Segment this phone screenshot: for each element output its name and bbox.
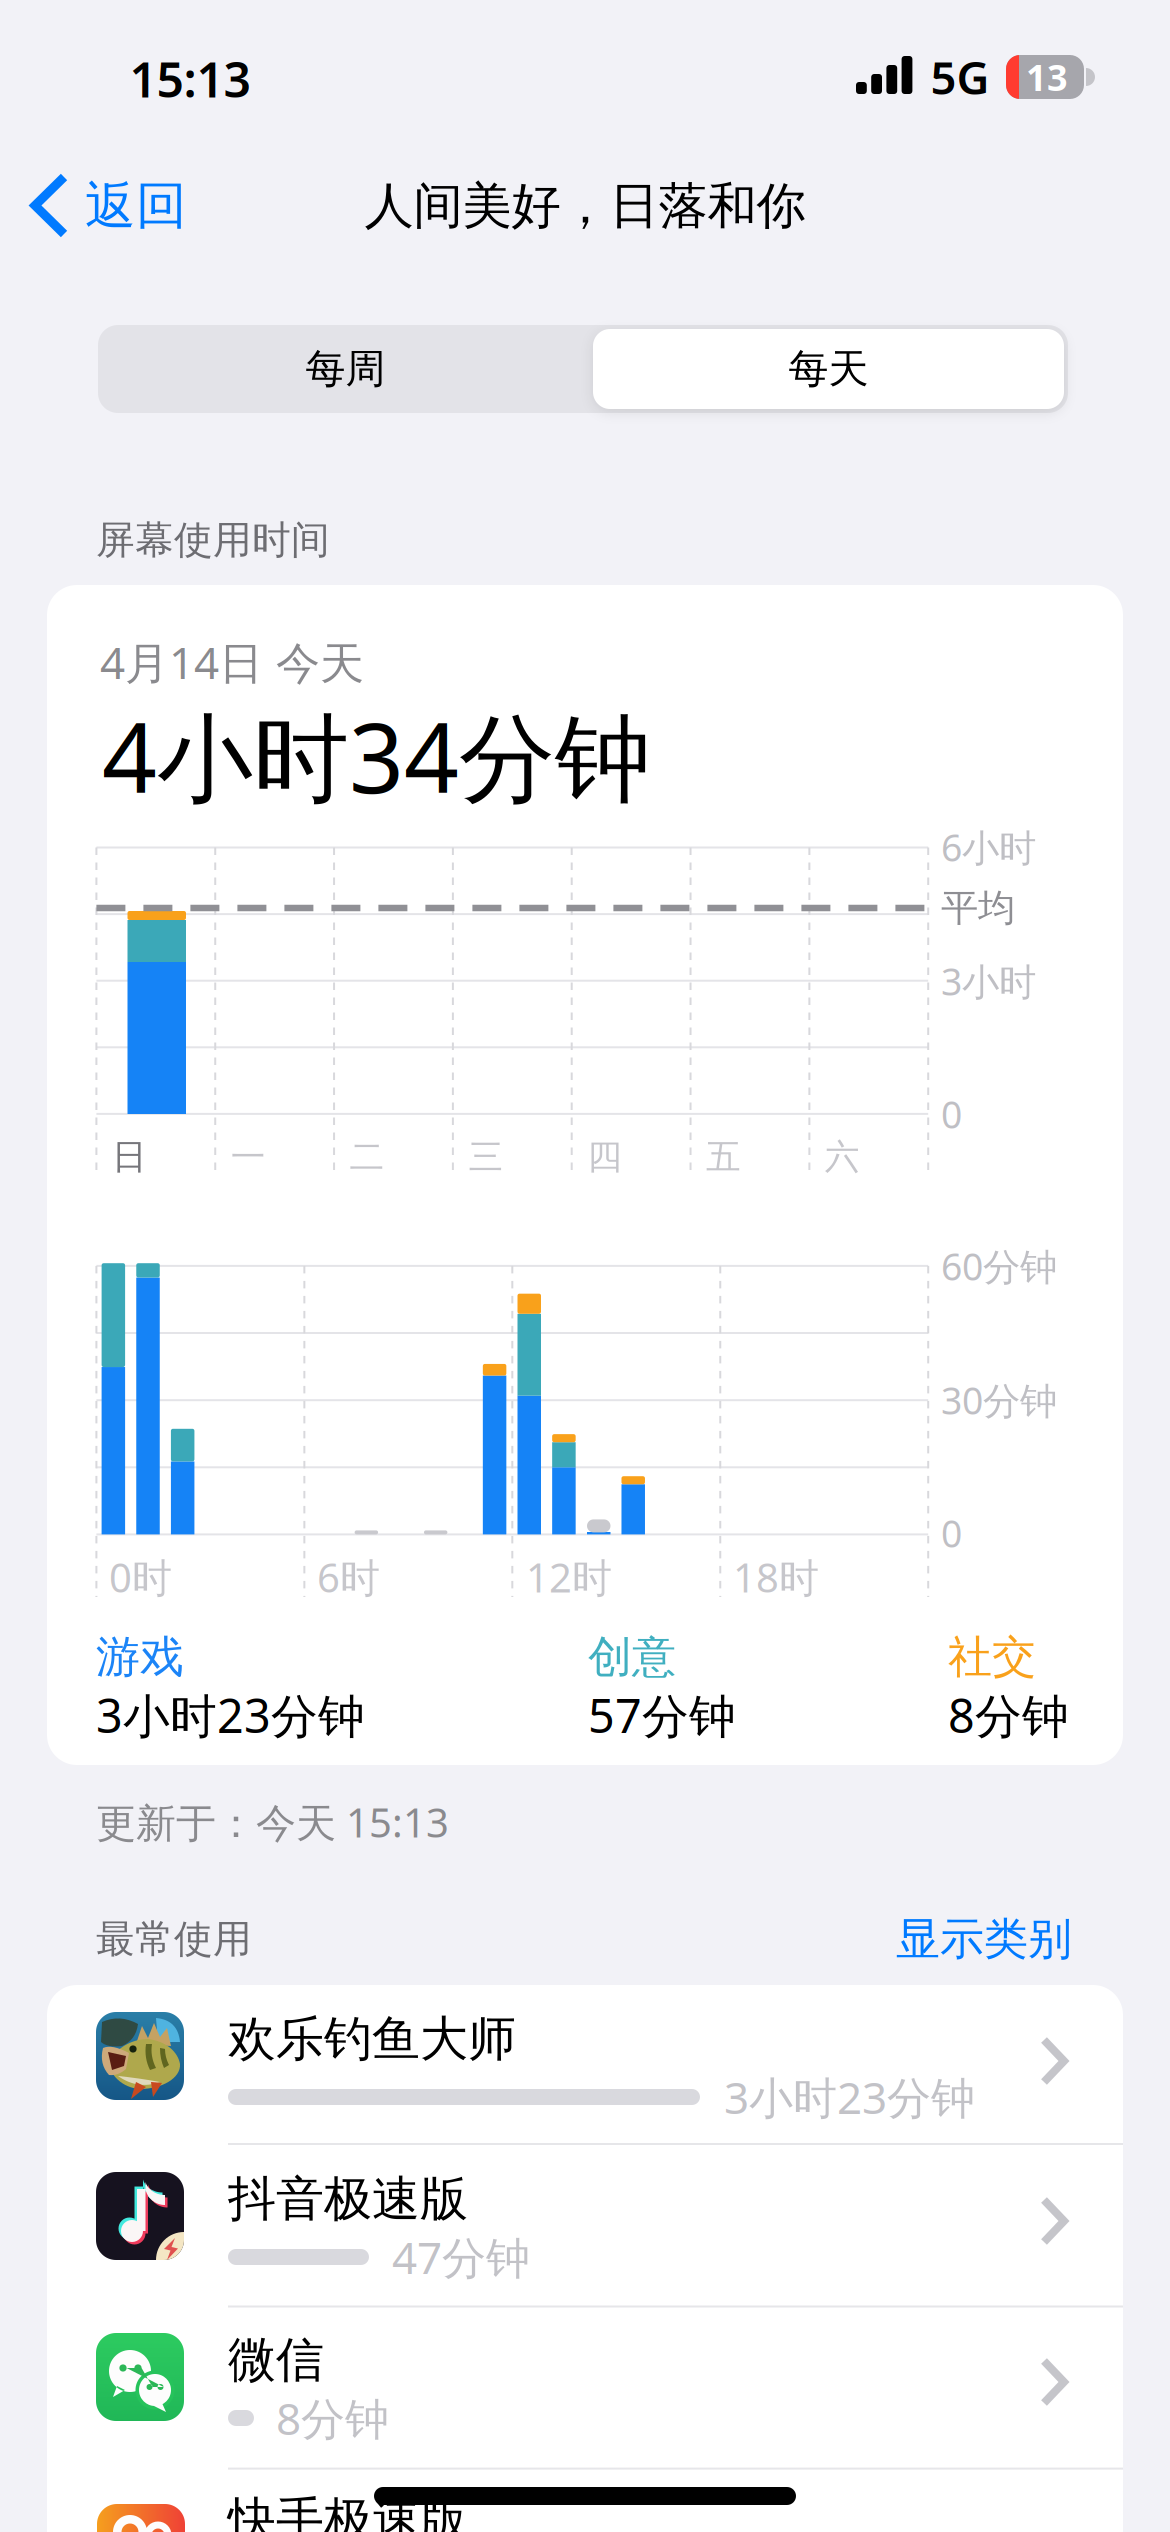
button[interactable]: 抖音极速版 [47,2145,1123,2306]
staticText: 8分钟 [948,1684,1069,1746]
staticText: 显示类别 [896,1912,1072,1966]
button[interactable]: 微信 [47,2306,1123,2467]
staticText: 8分钟 [276,2389,389,2447]
staticText: 47分钟 [392,2228,530,2286]
staticText: 抖音极速版 [228,2169,468,2228]
staticText: 三 [468,1136,503,1178]
staticText: 18时 [733,1550,819,1603]
staticText: 3小时23分钟 [724,2068,975,2126]
staticText: 屏幕使用时间 [96,516,330,564]
staticText: 6小时 [941,822,1036,872]
staticText: 更新于：今天 15:13 [96,1795,449,1848]
button[interactable]: 快手极速版 [47,2468,1123,2532]
staticText: 30分钟 [941,1375,1057,1425]
staticText: 社交 [948,1630,1036,1684]
staticText: 返回 [85,175,187,237]
staticText: 人间美好，日落和你 [364,176,805,236]
staticText: 0 [941,1508,962,1558]
staticText: 快手极速版 [228,2490,468,2532]
staticText: 3小时23分钟 [96,1684,365,1746]
button[interactable]: 每天 [593,329,1064,409]
staticText: 创意 [588,1630,676,1684]
staticText: 一 [231,1136,266,1178]
staticText: 5G [930,47,989,107]
staticText: 日 [112,1136,147,1178]
staticText: 四 [587,1136,622,1178]
staticText: 微信 [228,2330,324,2389]
staticText: 二 [350,1136,385,1178]
staticText: 4小时34分钟 [102,692,651,820]
staticText: 12时 [526,1550,612,1603]
staticText: 最常使用 [96,1915,252,1963]
staticText: 每周 [305,344,385,393]
staticText: 4月14日 今天 [100,633,364,691]
staticText: 57分钟 [588,1684,736,1746]
staticText: 欢乐钓鱼大师 [228,2009,516,2068]
staticText: 六 [825,1136,860,1178]
staticText: 每天 [788,344,868,393]
staticText: 3小时 [941,956,1036,1006]
staticText: 五 [706,1136,741,1178]
staticText: 60分钟 [941,1241,1057,1291]
button[interactable]: 欢乐钓鱼大师 [47,1985,1123,2146]
staticText: 6时 [317,1550,380,1603]
button[interactable]: 每周 [108,325,583,413]
button[interactable]: 返回 [27,171,212,241]
staticText: 0 [941,1089,962,1139]
staticText: 15:13 [129,47,250,111]
staticText: 13 [1026,53,1068,101]
staticText: 平均 [941,885,1015,931]
staticText: 游戏 [96,1630,184,1684]
staticText: 0时 [109,1550,172,1603]
